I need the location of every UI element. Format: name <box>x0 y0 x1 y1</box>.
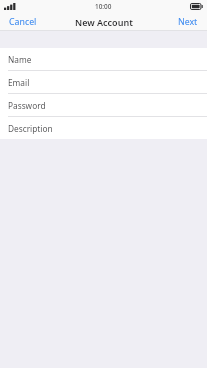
other: Cellular signal <box>4 3 16 10</box>
button[interactable]: Email <box>0 71 207 93</box>
staticText: 10:00 <box>95 2 112 11</box>
staticText: Next <box>178 16 198 28</box>
button[interactable]: Next <box>169 13 207 30</box>
other: Battery full <box>190 3 203 10</box>
staticText: Description <box>8 123 53 134</box>
button[interactable]: Cancel <box>0 13 46 30</box>
button[interactable]: Name <box>0 48 207 70</box>
staticText: Email <box>8 77 30 88</box>
staticText: New Account <box>75 16 133 28</box>
staticText: Cancel <box>9 16 37 28</box>
button[interactable]: Password <box>0 94 207 116</box>
button[interactable]: Description <box>0 117 207 139</box>
staticText: Password <box>8 100 46 111</box>
staticText: Name <box>8 54 32 65</box>
